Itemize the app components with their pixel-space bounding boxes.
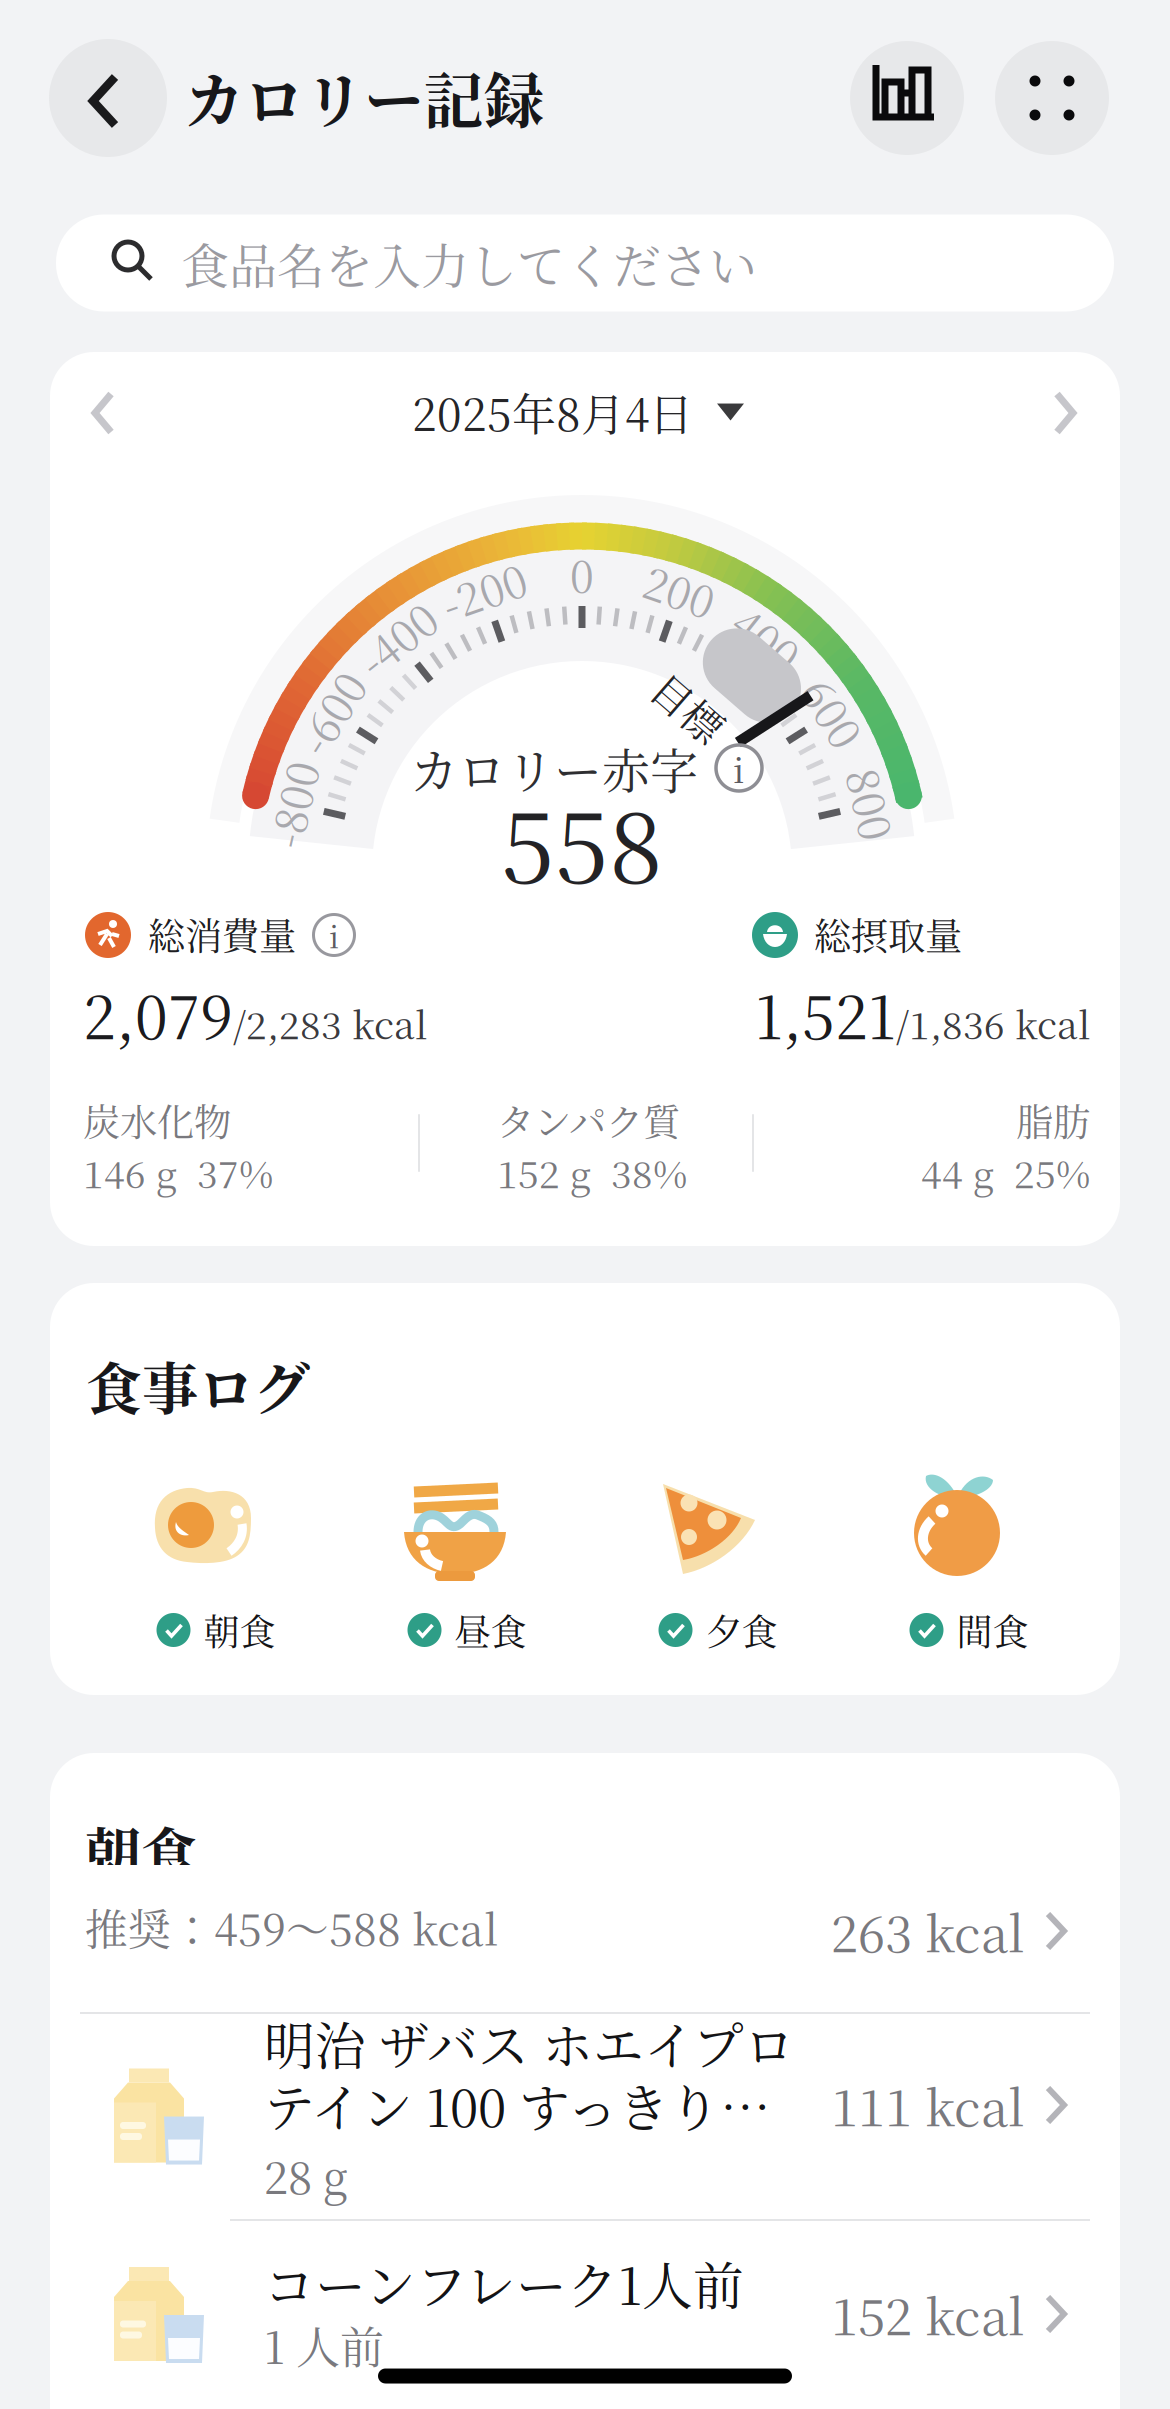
button[interactable]: More options [995,41,1109,155]
staticText: /1,836 kcal [896,996,1090,1050]
staticText: 炭水化物 [83,1093,231,1147]
staticText: /2,283 kcal [233,996,427,1050]
staticText: 400 [731,608,803,669]
staticText: 2025年8月4日 [412,380,693,444]
button[interactable]: Next day [1042,385,1084,443]
staticText: 総消費量 [148,907,296,961]
button[interactable]: 明治 ザバス ホエイプロ [0,0,1170,2409]
staticText: 600 [797,682,869,743]
staticText: 0 [570,543,594,605]
staticText: コーンフレーク1人前 [264,2247,744,2319]
staticText: -600 [287,682,374,743]
staticText: 間食 [956,1604,1028,1656]
staticText: 夕食 [705,1604,777,1656]
button[interactable]: 2025年8月4日 [412,380,744,444]
staticText: -200 [441,560,528,621]
staticText: タンパク質 [497,1093,680,1147]
staticText: 朝食 [85,1810,197,1890]
staticText: 脂肪 [1016,1093,1090,1147]
staticText: 1 人前 [264,2313,384,2377]
staticText: テイン 100 すっきり… [264,2069,771,2141]
staticText: 推奨：459〜588 kcal [85,1896,498,1958]
staticText: 1,521 [755,972,896,1056]
button[interactable]: Back [49,39,167,157]
staticText: 28 g [264,2143,348,2207]
button[interactable]: コーンフレーク1人前 [0,0,1170,2409]
staticText: 152 kcal [831,2279,1024,2349]
staticText: -800 [249,773,336,835]
staticText: 146 g 37% [83,1145,273,1199]
staticText: 800 [835,773,907,835]
button[interactable]: 推奨：459〜588 kcal [0,0,1170,2409]
staticText: カロリー赤字 [410,733,698,802]
staticText: i [329,913,339,957]
staticText: 総摂取量 [814,907,962,961]
button[interactable]: 昼食 [0,0,1170,2409]
staticText: 昼食 [454,1604,526,1656]
staticText: カロリー記録 [184,54,544,140]
button[interactable]: 食品名を入力してください [0,0,1170,2409]
staticText: -400 [354,608,441,669]
staticText: 朝食 [203,1604,275,1656]
staticText: i [733,743,745,793]
button[interactable]: Statistics [850,41,964,155]
staticText: 200 [644,560,716,621]
button[interactable]: 間食 [0,0,1170,2409]
staticText: 111 kcal [831,2070,1024,2140]
button[interactable]: Previous day [84,385,126,443]
button[interactable]: 夕食 [0,0,1170,2409]
staticText: 目標 [649,678,729,735]
staticText: 44 g 25% [921,1145,1090,1199]
staticText: 263 kcal [831,1896,1024,1966]
staticText: 152 g 38% [497,1145,687,1199]
button[interactable]: 朝食 [0,0,1170,2409]
staticText: 食品名を入力してください [181,228,757,297]
staticText: 明治 ザバス ホエイプロ [264,2007,795,2079]
staticText: 2,079 [83,972,233,1056]
staticText: 558 [501,773,663,911]
staticText: 食事ログ [86,1345,310,1425]
